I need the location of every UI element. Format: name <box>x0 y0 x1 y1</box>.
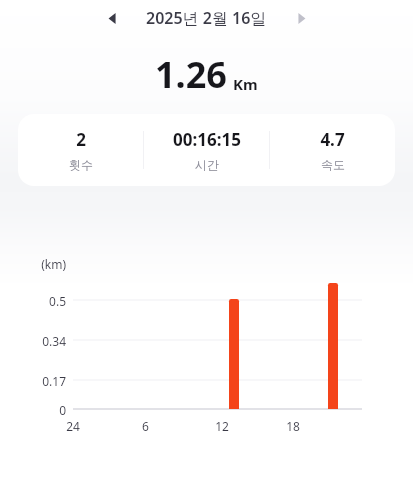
button[interactable]: Next day <box>287 4 315 32</box>
staticText: 6 <box>142 418 149 434</box>
staticText: 0.34 <box>0 333 66 349</box>
staticText: 속도 <box>321 157 345 172</box>
staticText: Km <box>233 74 258 94</box>
staticText: 12 <box>215 418 229 434</box>
staticText: 시간 <box>195 157 219 172</box>
staticText: 4.7 <box>320 128 345 151</box>
staticText: 1.26 <box>155 50 227 99</box>
button[interactable]: Previous day <box>98 4 126 32</box>
staticText: 0.5 <box>0 293 66 309</box>
staticText: 0.17 <box>0 373 66 389</box>
staticText: 횟수 <box>69 157 93 172</box>
staticText: 18 <box>286 418 300 434</box>
staticText: 24 <box>66 418 80 434</box>
staticText: 0 <box>0 402 66 418</box>
staticText: 00:16:15 <box>173 128 241 151</box>
staticText: 2 <box>76 128 86 151</box>
button[interactable]: 2 <box>18 114 395 186</box>
staticText: (km) <box>0 256 66 272</box>
staticText: 2025년 2월 16일 <box>146 7 267 29</box>
